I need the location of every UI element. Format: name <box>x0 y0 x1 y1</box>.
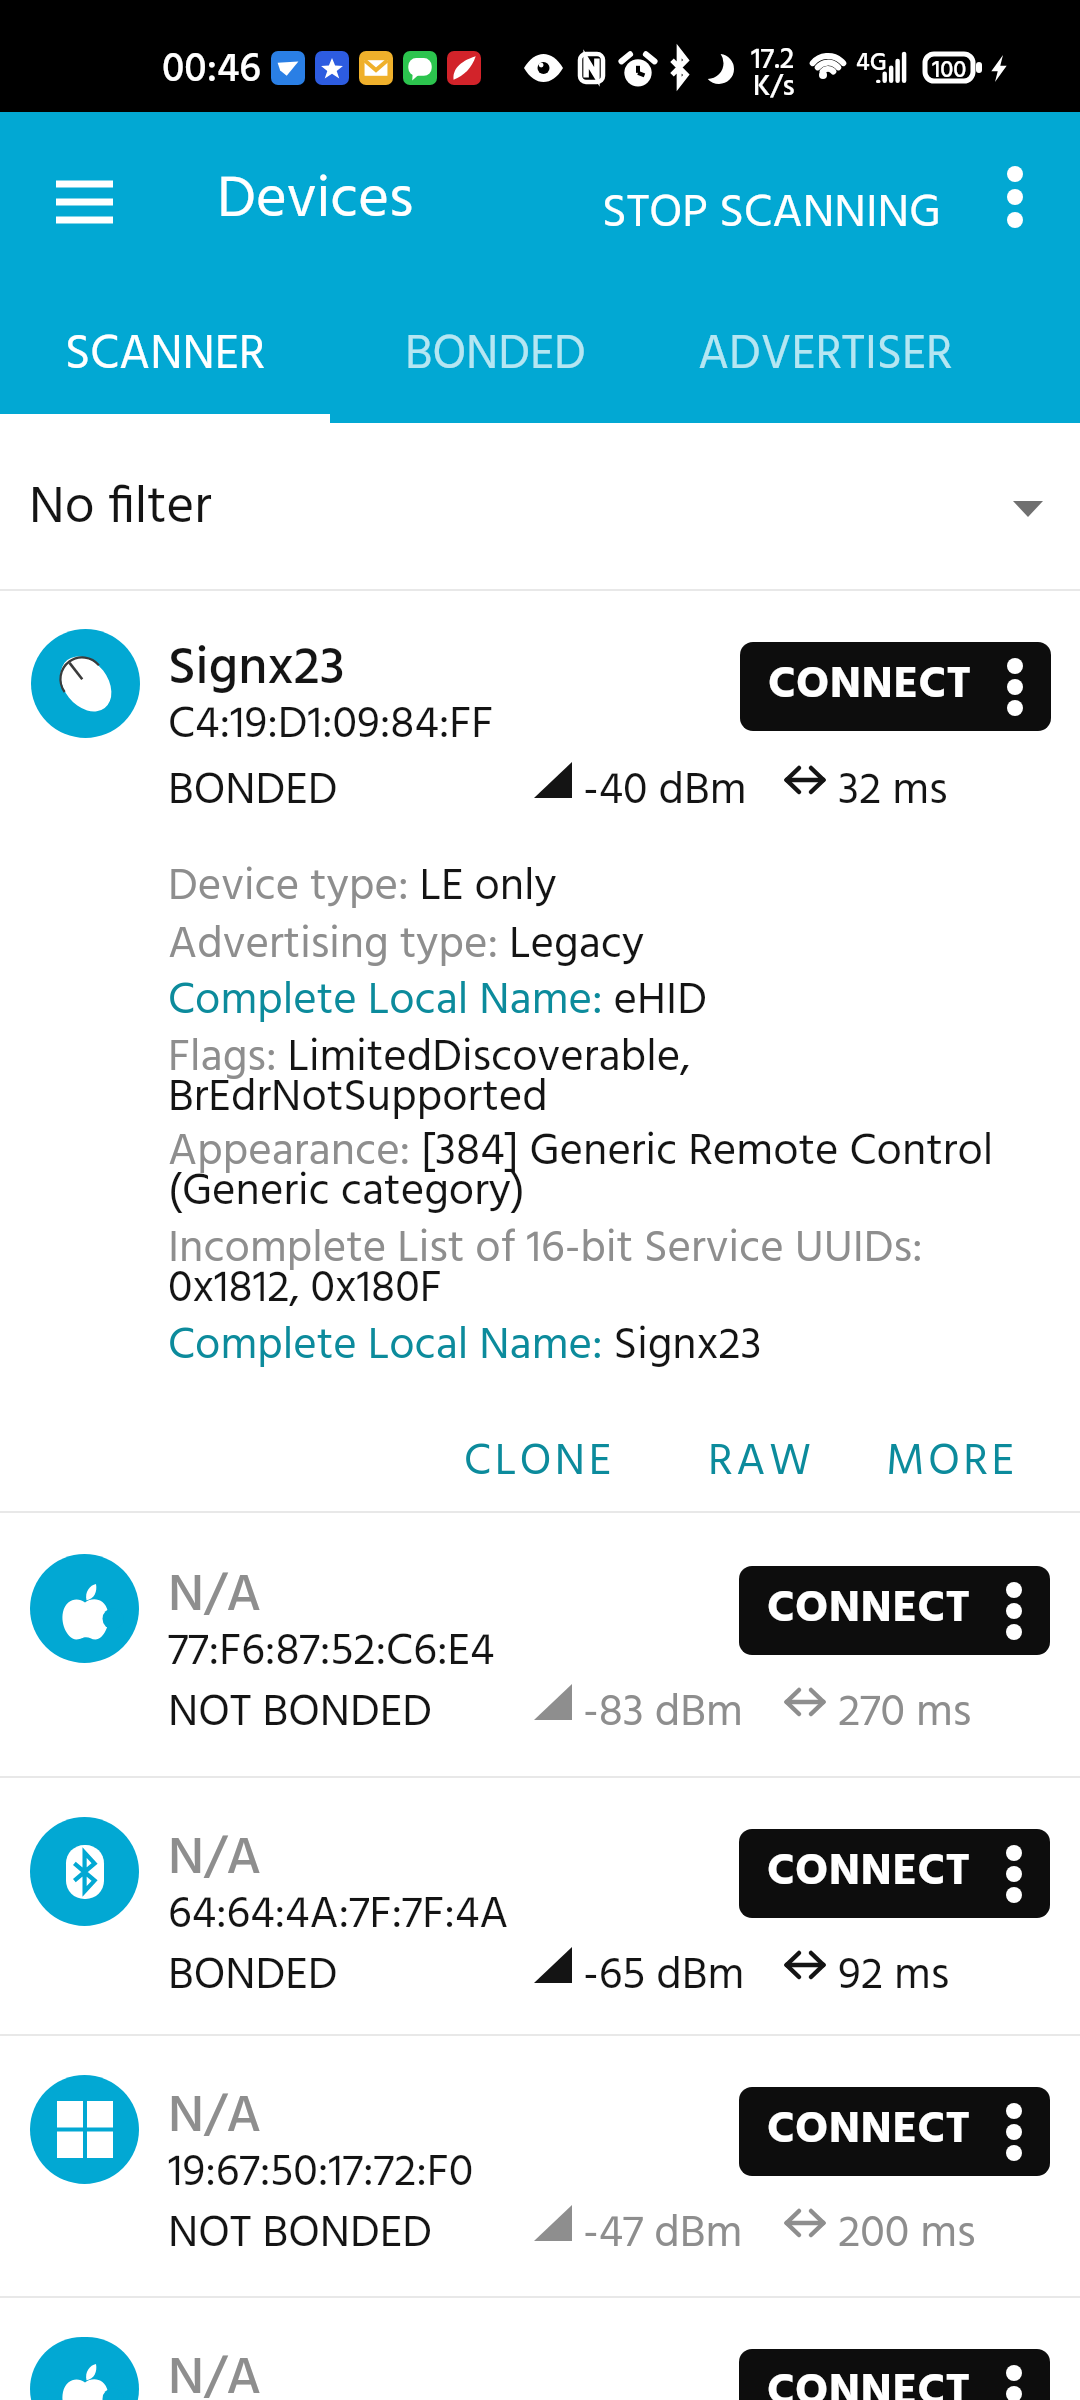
button[interactable]: CONNECT <box>739 1566 1050 1655</box>
staticText: CONNECT <box>767 1837 971 1909</box>
staticText: MORE <box>886 1427 1018 1499</box>
staticText: 4G <box>856 44 887 84</box>
staticText: 32 ms <box>838 756 948 828</box>
staticText: Devices <box>217 154 414 248</box>
staticText: Advertising type: Legacy <box>168 910 1068 982</box>
staticText: Appearance: [384] Generic Remote Control… <box>168 1117 1068 1229</box>
button[interactable]: N/A <box>0 1513 1080 1776</box>
button[interactable]: N/A <box>0 2034 1080 2296</box>
staticText: RAW <box>708 1427 815 1499</box>
button[interactable]: STOP SCANNING <box>586 152 957 275</box>
staticText: -40 dBm <box>583 756 747 828</box>
staticText: BONDED <box>168 756 338 828</box>
staticText: ADVERTISER <box>698 317 953 394</box>
staticText: Complete Local Name: eHID <box>168 966 1068 1038</box>
staticText: Flags: LimitedDiscoverable, BrEdrNotSupp… <box>168 1023 1068 1135</box>
staticText: No filter <box>29 466 212 551</box>
button[interactable]: RAW <box>700 1415 823 1511</box>
button[interactable]: More options <box>970 152 1060 242</box>
staticText: N/A <box>168 1554 262 1639</box>
button[interactable]: CONNECT <box>739 2349 1050 2400</box>
staticText: STOP SCANNING <box>602 176 941 251</box>
staticText: Complete Local Name: Signx23 <box>168 1311 1068 1383</box>
staticText: N/A <box>168 2337 262 2400</box>
staticText: CLONE <box>464 1427 615 1499</box>
button[interactable]: CLONE <box>456 1415 623 1511</box>
staticText: NOT BONDED <box>168 2199 432 2271</box>
button[interactable]: ADVERTISER <box>660 292 990 423</box>
staticText: 17.2 <box>751 37 795 83</box>
staticText: Device type: LE only <box>168 852 1068 924</box>
staticText: 270 ms <box>838 1678 972 1750</box>
staticText: BONDED <box>168 1941 338 2013</box>
staticText: NOT BONDED <box>168 1678 432 1750</box>
button[interactable]: SCANNER <box>0 292 330 423</box>
button[interactable]: No filter <box>0 423 1080 590</box>
button[interactable]: BONDED <box>330 292 660 423</box>
staticText: Signx23 <box>168 627 345 712</box>
staticText: SCANNER <box>65 317 266 394</box>
staticText: N/A <box>168 2075 262 2160</box>
button[interactable]: N/A <box>0 1776 1080 2034</box>
staticText: CONNECT <box>767 2095 971 2167</box>
staticText: 00:46 <box>162 38 262 104</box>
staticText: 100 <box>932 52 967 83</box>
staticText: 92 ms <box>838 1941 950 2013</box>
staticText: -83 dBm <box>583 1678 743 1750</box>
staticText: 64:64:4A:7F:7F:4A <box>168 1880 509 1952</box>
staticText: CONNECT <box>768 650 972 722</box>
staticText: C4:19:D1:09:84:FF <box>168 690 494 762</box>
staticText: BONDED <box>405 317 586 394</box>
button[interactable]: MORE <box>878 1415 1026 1511</box>
staticText: -65 dBm <box>583 1941 745 2013</box>
button[interactable]: Navigation menu <box>36 154 132 250</box>
button[interactable]: CONNECT <box>739 2087 1050 2176</box>
staticText: K/s <box>753 64 795 110</box>
staticText: CONNECT <box>767 2357 971 2400</box>
staticText: 77:F6:87:52:C6:E4 <box>168 1617 495 1689</box>
staticText: N/A <box>168 1817 262 1902</box>
button[interactable]: CONNECT <box>739 1829 1050 1918</box>
button[interactable]: CONNECT <box>740 642 1051 731</box>
staticText: CONNECT <box>767 1574 971 1646</box>
staticText: -47 dBm <box>583 2199 743 2271</box>
button[interactable]: N/A <box>0 2296 1080 2400</box>
staticText: 19:67:50:17:72:F0 <box>168 2138 474 2210</box>
staticText: 200 ms <box>838 2199 976 2271</box>
staticText: Incomplete List of 16-bit Service UUIDs:… <box>168 1214 1068 1326</box>
button[interactable]: Signx23 <box>0 590 1080 1512</box>
